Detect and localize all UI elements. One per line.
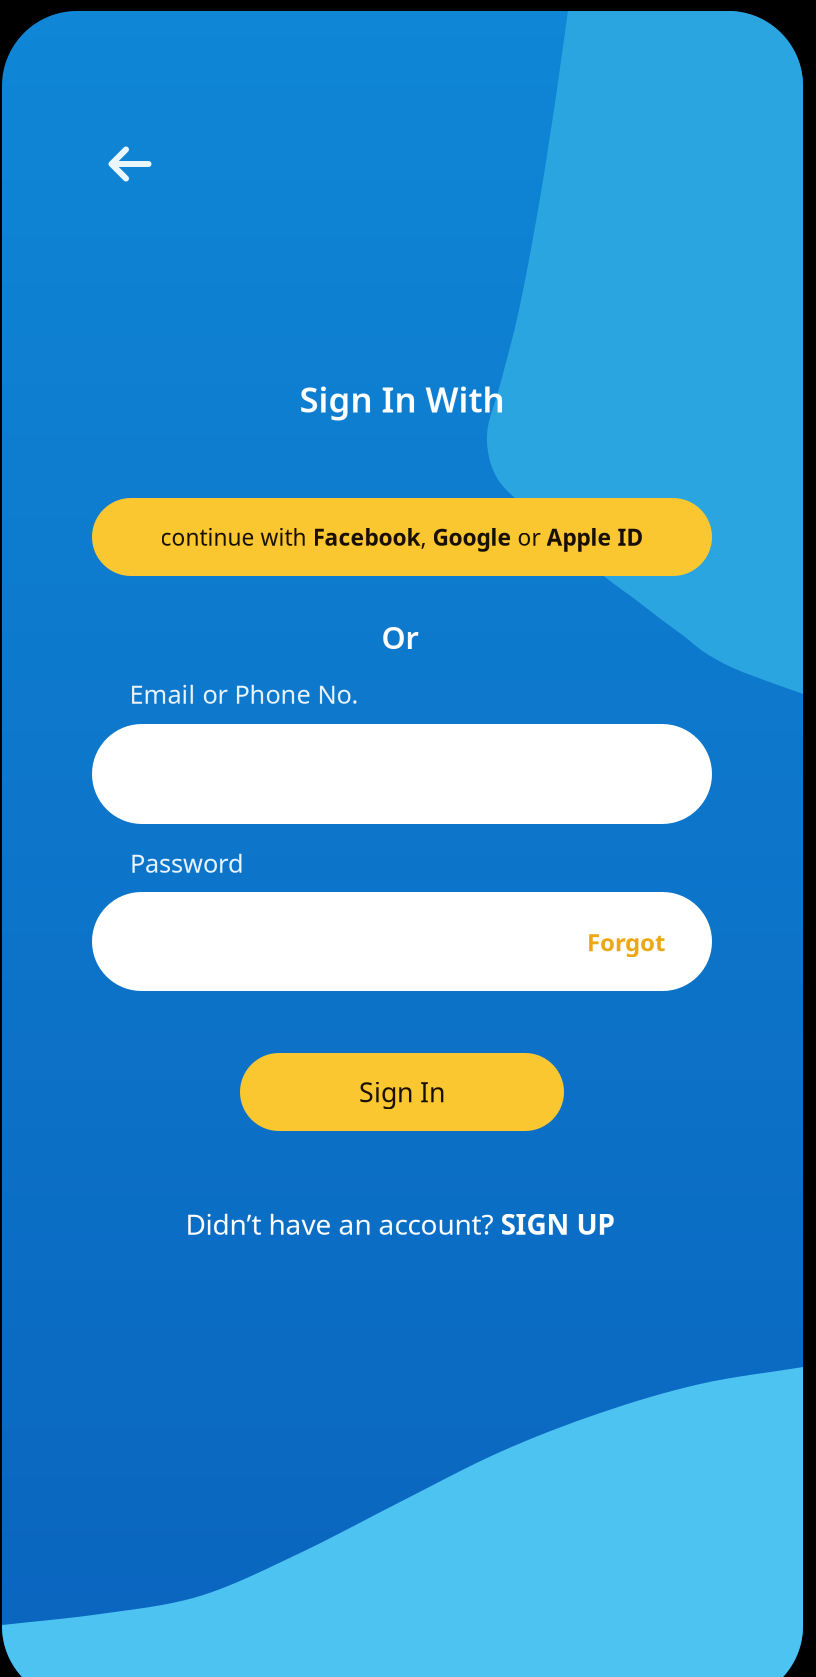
button[interactable]: Password (92, 892, 712, 991)
staticText: Sign In With (299, 376, 504, 422)
button[interactable]: Back (97, 131, 163, 197)
button[interactable]: Email or Phone No. (92, 724, 712, 824)
staticText: Didn’t have an account? SIGN UP (185, 1205, 614, 1243)
button[interactable]: Didn’t have an account? SIGN UP (179, 1199, 620, 1249)
staticText: Sign In (359, 1074, 445, 1110)
staticText: continue with Facebook, Google or Apple … (160, 522, 643, 552)
button[interactable]: Sign In (240, 1053, 564, 1131)
button[interactable]: Forgot (573, 908, 679, 976)
staticText: Email or Phone No. (129, 677, 358, 711)
staticText: Password (130, 846, 244, 880)
staticText: Forgot (587, 926, 665, 958)
staticText: Or (381, 617, 418, 657)
button[interactable]: continue with Facebook, Google or Apple … (92, 498, 712, 576)
